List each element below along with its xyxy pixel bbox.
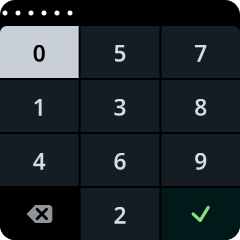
staticText: 1 (33, 92, 46, 122)
staticText: 5 (113, 38, 126, 68)
staticText: 3 (113, 92, 126, 122)
button[interactable]: Delete (0, 188, 79, 240)
staticText: 9 (194, 146, 207, 176)
button[interactable]: 3 (81, 80, 159, 132)
staticText: 0 (33, 38, 46, 68)
button[interactable]: 6 (81, 134, 159, 186)
button[interactable]: 5 (81, 26, 159, 78)
button[interactable]: 9 (161, 134, 240, 186)
staticText: 8 (194, 92, 207, 122)
button[interactable]: 0 (0, 26, 79, 78)
button[interactable]: 8 (161, 80, 240, 132)
button[interactable]: 2 (81, 188, 159, 240)
button[interactable]: 4 (0, 134, 79, 186)
staticText: 7 (194, 38, 207, 68)
staticText: 2 (113, 200, 126, 230)
button[interactable]: Confirm (161, 188, 240, 240)
button[interactable]: 7 (161, 26, 240, 78)
staticText: 4 (33, 146, 46, 176)
staticText: 6 (113, 146, 126, 176)
button[interactable]: 1 (0, 80, 79, 132)
